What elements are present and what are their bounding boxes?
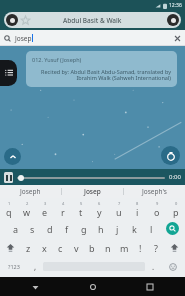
staticText: Joseph's [142, 187, 167, 196]
button[interactable]: 7 [109, 199, 128, 219]
button[interactable]: b [84, 238, 100, 257]
button[interactable]: Shift [0, 238, 20, 257]
button[interactable]: Favorite [20, 15, 31, 26]
staticText: f [65, 223, 69, 235]
button[interactable]: Pause [4, 172, 13, 183]
button[interactable]: Josep [62, 185, 123, 198]
button[interactable]: 5 [72, 199, 90, 219]
staticText: 8 [136, 201, 139, 206]
button[interactable]: 2 [18, 199, 36, 219]
button[interactable]: c [52, 238, 68, 257]
staticText: , [34, 261, 37, 272]
button[interactable]: 8 [128, 199, 147, 219]
button[interactable]: , [27, 257, 43, 276]
staticText: q [6, 206, 12, 218]
staticText: w [23, 206, 31, 218]
staticText: ! [139, 242, 142, 254]
staticText: k [132, 223, 137, 235]
button[interactable]: ? [148, 238, 164, 257]
button[interactable]: j [109, 219, 126, 238]
button[interactable]: 012. Yusuf (Joseph) [26, 51, 177, 87]
staticText: . [152, 261, 155, 272]
button[interactable]: m [116, 238, 132, 257]
staticText: v [74, 242, 79, 254]
button[interactable]: Josep [4, 30, 181, 46]
button[interactable]: f [58, 219, 75, 238]
staticText: r [61, 206, 65, 218]
button[interactable]: Back [28, 280, 42, 294]
button[interactable]: Joseph's [124, 185, 185, 198]
staticText: d [47, 223, 53, 235]
button[interactable]: n [100, 238, 116, 257]
staticText: p [173, 206, 179, 218]
button[interactable]: 6 [90, 199, 109, 219]
button[interactable]: Search [160, 219, 185, 238]
staticText: 3 [44, 201, 47, 206]
staticText: y [97, 206, 102, 218]
button[interactable]: h [92, 219, 109, 238]
staticText: x [42, 242, 47, 254]
button[interactable]: z [20, 238, 36, 257]
staticText: s [30, 223, 35, 235]
staticText: 2 [26, 201, 29, 206]
staticText: ? [154, 242, 158, 254]
button[interactable]: Navigation [4, 12, 181, 28]
button[interactable]: g [75, 219, 92, 238]
staticText: ?123 [8, 263, 20, 270]
button[interactable]: Emoji [161, 257, 185, 276]
staticText: m [120, 242, 129, 254]
staticText: j [116, 223, 119, 235]
staticText: e [42, 206, 48, 218]
button[interactable]: Joseph [0, 185, 61, 198]
staticText: 12:36 [169, 2, 182, 9]
button[interactable]: More options [167, 14, 179, 26]
staticText: z [26, 242, 31, 254]
button[interactable] [17, 172, 165, 183]
button[interactable]: s [24, 219, 41, 238]
staticText: 1 [8, 201, 11, 206]
staticText: 7 [118, 201, 121, 206]
staticText: 9 [156, 201, 159, 206]
button[interactable]: 3 [36, 199, 54, 219]
staticText: u [116, 206, 122, 218]
staticText: o [154, 206, 160, 218]
staticText: a [13, 223, 19, 235]
button[interactable]: ?123 [0, 257, 27, 276]
staticText: 4 [62, 201, 65, 206]
staticText: Abdul Basit & Walk [63, 16, 122, 25]
other: Navigation [6, 14, 18, 26]
button[interactable]: Recents [143, 280, 157, 294]
button[interactable]: x [36, 238, 52, 257]
staticText: h [98, 223, 104, 235]
button[interactable]: 1 [0, 199, 18, 219]
staticText: 6 [98, 201, 101, 206]
staticText: Josep [15, 34, 32, 43]
button[interactable]: . [145, 257, 161, 276]
button[interactable]: k [126, 219, 143, 238]
button[interactable]: Open list [0, 60, 17, 86]
staticText: c [58, 242, 63, 254]
staticText: t [79, 206, 83, 218]
staticText: 0 [175, 201, 178, 206]
button[interactable]: d [41, 219, 58, 238]
button[interactable]: Home [86, 280, 100, 294]
button[interactable]: ! [132, 238, 148, 257]
staticText: i [136, 206, 139, 218]
staticText: 5 [80, 201, 83, 206]
button[interactable]: 0 [166, 199, 185, 219]
staticText: 0:00 [169, 173, 181, 181]
button[interactable]: a [7, 219, 24, 238]
staticText: l [150, 223, 153, 235]
staticText: g [81, 223, 87, 235]
button[interactable]: Clear [173, 34, 181, 42]
button[interactable]: 9 [147, 199, 166, 219]
button[interactable]: Shift [164, 238, 185, 257]
button[interactable]: Scroll up [4, 148, 21, 165]
staticText: Joseph [20, 187, 41, 196]
button[interactable]: v [68, 238, 84, 257]
button[interactable]: l [143, 219, 160, 238]
button[interactable]: Sleep timer [161, 146, 180, 165]
button[interactable]: 4 [54, 199, 72, 219]
staticText: Recited by: Abdul Basit Abdu-Samad, tran… [32, 68, 171, 82]
